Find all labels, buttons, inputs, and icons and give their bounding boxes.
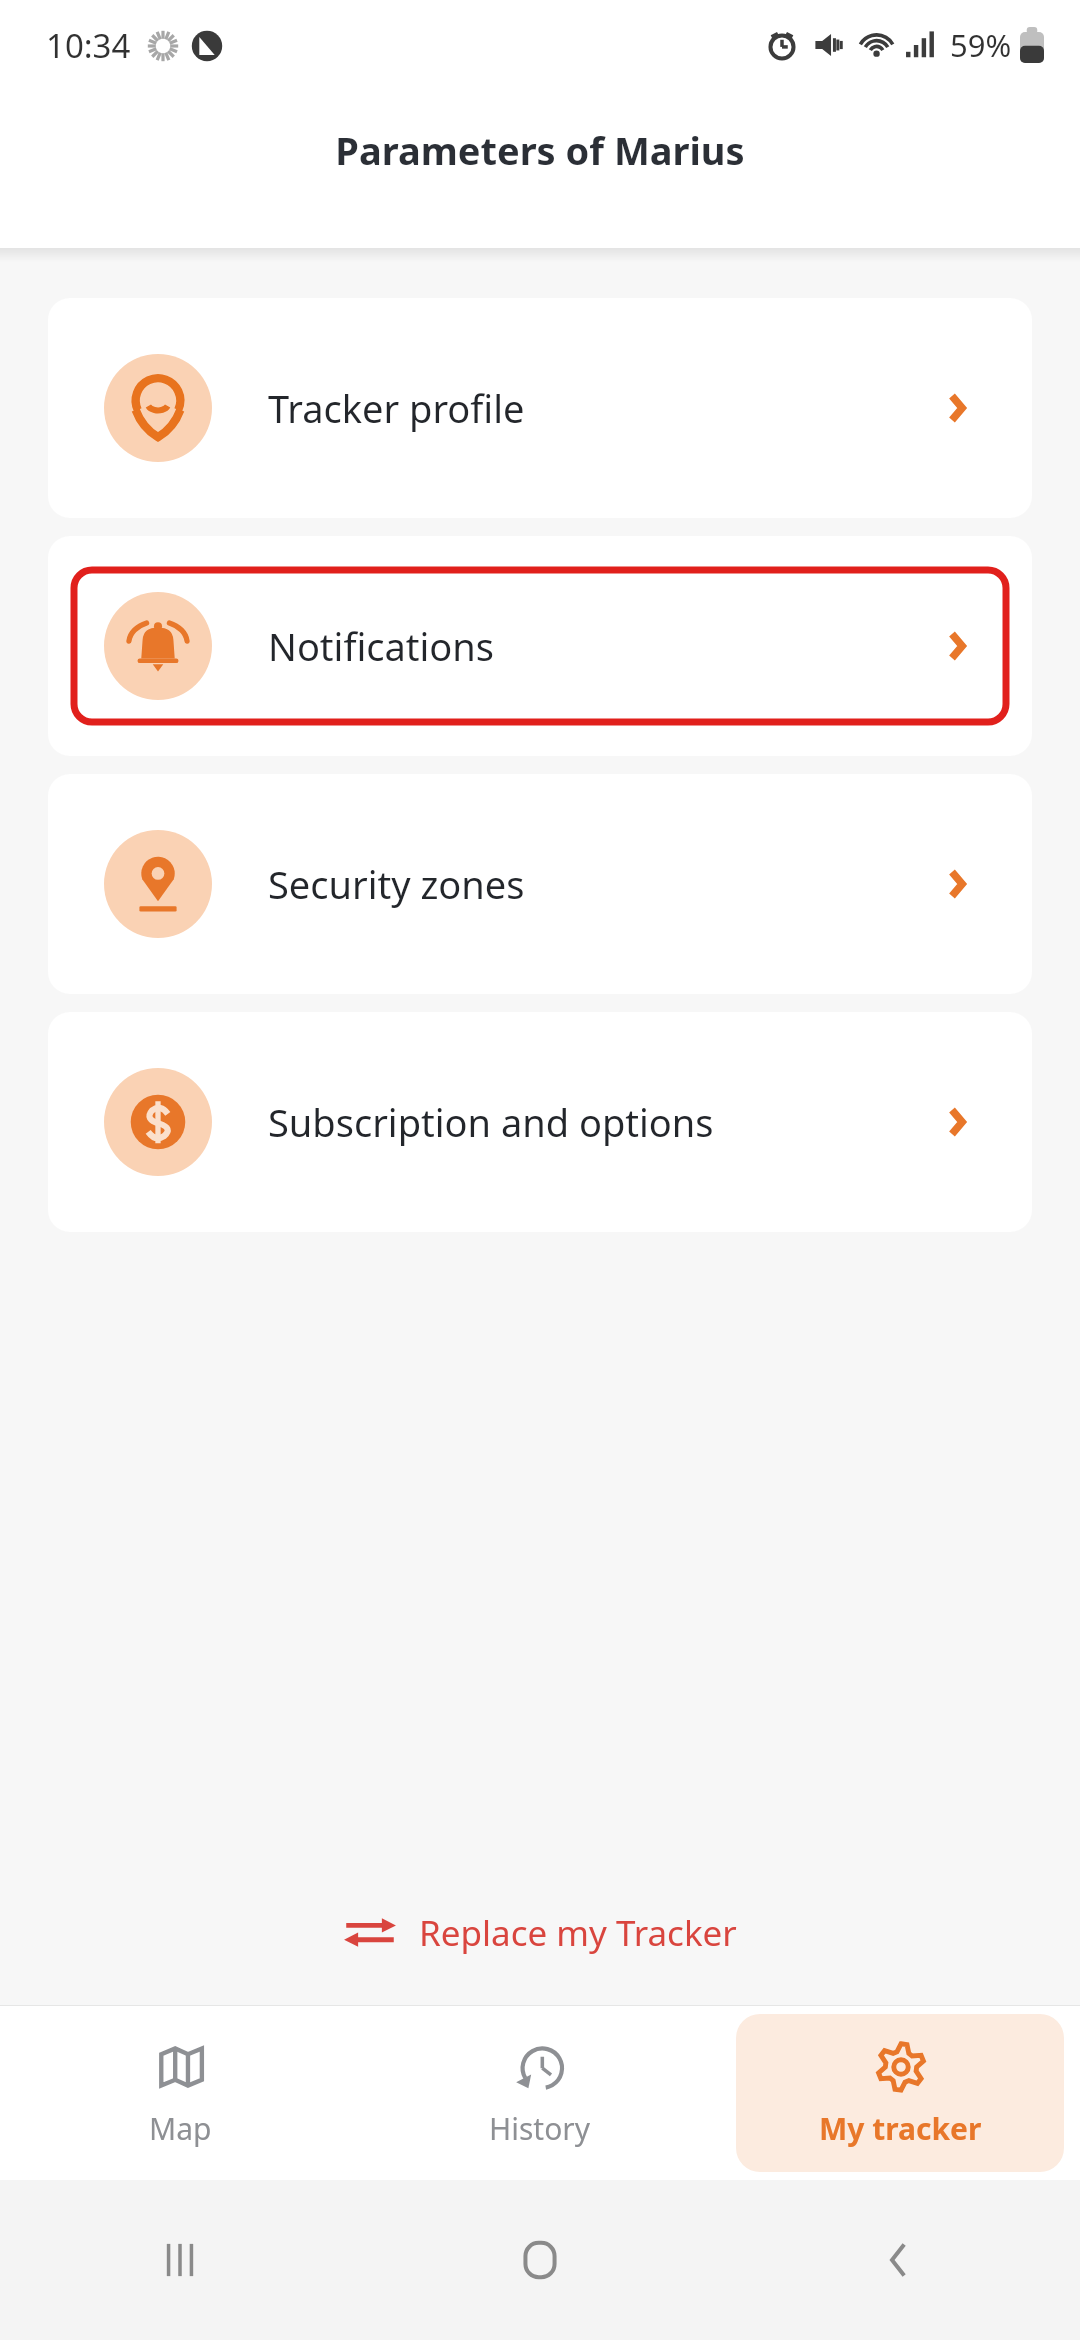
staticText: My tracker (819, 2108, 982, 2149)
button[interactable]: My tracker (736, 2014, 1064, 2172)
staticText: 59% (950, 24, 1012, 66)
button[interactable]: Notifications (48, 536, 1032, 756)
staticText: History (489, 2108, 591, 2149)
staticText: Parameters of Marius (335, 124, 745, 176)
staticText: Notifications (268, 620, 936, 672)
staticText: Replace my Tracker (419, 1909, 737, 1957)
button[interactable]: Subscription and options (48, 1012, 1032, 1232)
staticText: Tracker profile (268, 382, 936, 434)
button[interactable]: Tracker profile (48, 298, 1032, 518)
button[interactable]: Security zones (48, 774, 1032, 994)
staticText: Map (149, 2108, 212, 2149)
staticText: Subscription and options (268, 1096, 936, 1148)
button[interactable]: Map (16, 2014, 344, 2172)
staticText: Security zones (268, 858, 936, 910)
button[interactable]: Replace my Tracker (0, 1883, 1080, 1983)
staticText: 10:34 (46, 23, 131, 68)
button[interactable]: History (376, 2014, 704, 2172)
